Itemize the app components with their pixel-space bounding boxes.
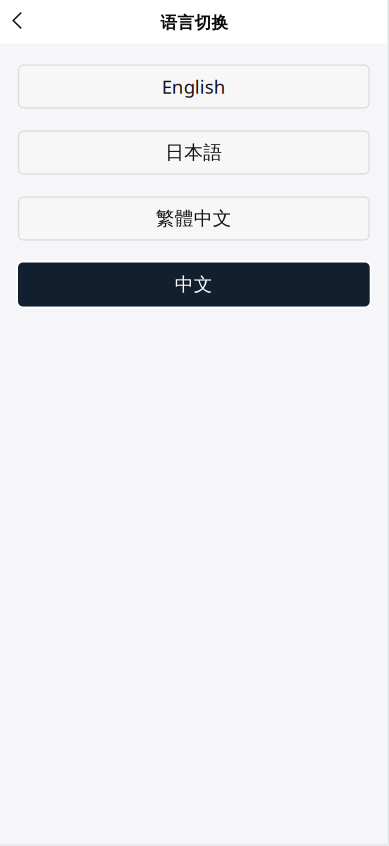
button[interactable]: Back: [0, 0, 34, 43]
staticText: 日本語: [165, 141, 222, 164]
button[interactable]: 中文: [18, 262, 370, 306]
staticText: English: [162, 74, 226, 99]
button[interactable]: 繁體中文: [18, 196, 370, 240]
button[interactable]: English: [18, 64, 370, 108]
button[interactable]: 日本語: [18, 130, 370, 174]
staticText: 繁體中文: [156, 207, 232, 230]
staticText: 中文: [175, 273, 213, 296]
staticText: 语言切换: [160, 12, 228, 33]
